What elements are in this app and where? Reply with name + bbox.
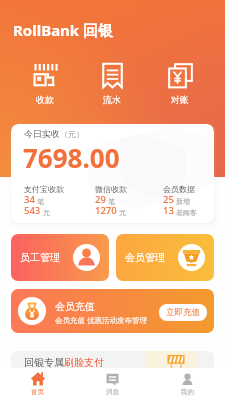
staticText: 会员充值: [55, 300, 95, 313]
staticText: 25: [163, 193, 174, 206]
button[interactable]: 对账: [146, 62, 214, 105]
button[interactable]: 今日实收: [11, 124, 214, 223]
staticText: 笔: [37, 197, 44, 206]
staticText: 13: [163, 204, 174, 217]
staticText: 回银专属: [24, 356, 64, 369]
staticText: 老顾客: [176, 208, 197, 217]
button[interactable]: 我的: [150, 368, 225, 400]
button[interactable]: 消息: [75, 368, 150, 400]
other: 对账: [167, 62, 194, 89]
other: 收款: [33, 64, 57, 88]
other: 流水: [100, 63, 125, 88]
staticText: 对账: [171, 94, 189, 105]
staticText: 1270: [95, 204, 117, 217]
staticText: 收款: [36, 94, 54, 105]
button[interactable]: 会员管理: [116, 234, 214, 281]
staticText: 34: [24, 193, 35, 206]
staticText: 笔: [108, 197, 115, 206]
button[interactable]: 会员充值: [11, 289, 214, 333]
staticText: 会员数据: [163, 184, 195, 194]
staticText: 首页: [31, 388, 44, 396]
staticText: 元: [119, 208, 126, 217]
button[interactable]: 收款: [11, 62, 78, 105]
other: 我的: [181, 373, 194, 386]
button[interactable]: 员工管理: [11, 234, 109, 281]
staticText: 微信收款: [95, 184, 127, 194]
button[interactable]: 立即充值: [166, 307, 200, 318]
staticText: 543: [24, 204, 41, 217]
other: 消息: [106, 373, 119, 386]
button[interactable]: 流水: [78, 62, 146, 105]
staticText: 员工管理: [20, 251, 60, 264]
staticText: 29: [95, 193, 106, 206]
button[interactable]: 回银专属: [11, 351, 214, 395]
staticText: RollBank 回银: [13, 20, 114, 40]
staticText: 会员管理: [125, 251, 165, 264]
staticText: 刷脸支付: [64, 356, 104, 369]
staticText: 元: [43, 208, 50, 217]
staticText: 7698.00: [23, 140, 120, 175]
staticText: 会员充值 优惠活动发布管理: [55, 315, 147, 325]
staticText: 今日实收: [24, 128, 60, 139]
staticText: 我的: [181, 388, 194, 396]
staticText: 流水: [103, 94, 121, 105]
staticText: 立即充值: [166, 307, 200, 318]
button[interactable]: 首页: [0, 368, 75, 400]
staticText: （元）: [60, 129, 84, 139]
staticText: 支付宝收款: [24, 184, 64, 194]
staticText: 消息: [106, 388, 119, 396]
staticText: 新增: [176, 197, 190, 206]
other: 首页: [31, 372, 45, 386]
